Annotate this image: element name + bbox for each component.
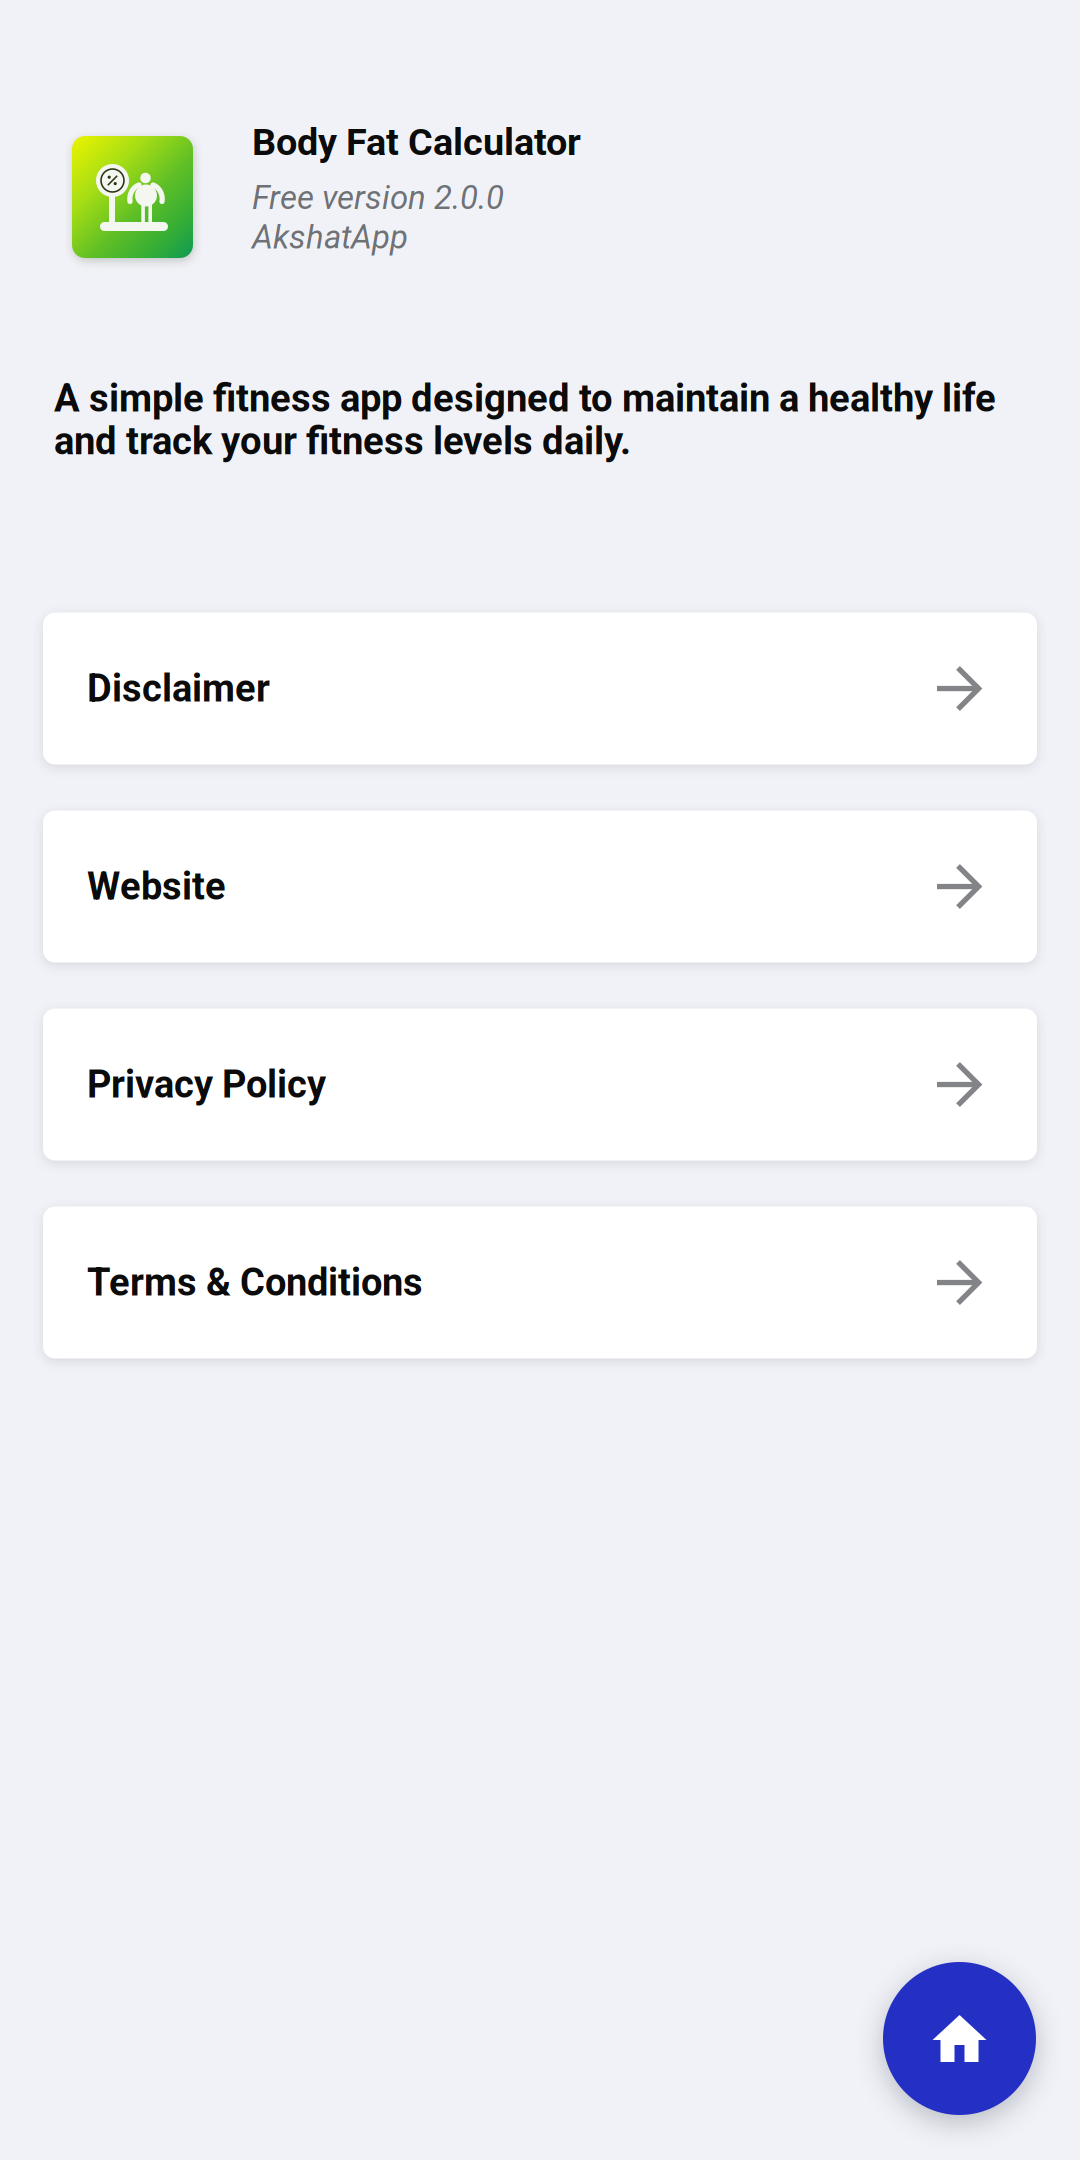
button[interactable]: Disclaimer (43, 612, 1037, 764)
staticText: Disclaimer (87, 666, 270, 711)
button[interactable]: Terms & Conditions (43, 1206, 1037, 1358)
staticText: AkshatApp (252, 218, 408, 257)
staticText: Privacy Policy (87, 1062, 326, 1107)
button[interactable]: Home (883, 1962, 1036, 2115)
staticText: Body Fat Calculator (252, 120, 581, 164)
staticText: A simple fitness app designed to maintai… (54, 376, 996, 463)
staticText: Website (87, 864, 226, 909)
staticText: Terms & Conditions (87, 1260, 423, 1305)
button[interactable]: Website (43, 810, 1037, 962)
staticText: Free version 2.0.0 (252, 178, 504, 217)
button[interactable]: Privacy Policy (43, 1008, 1037, 1160)
